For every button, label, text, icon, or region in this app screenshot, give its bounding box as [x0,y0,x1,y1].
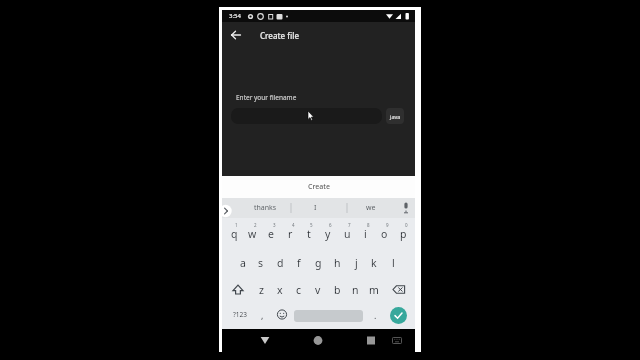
staticText: t [307,227,311,241]
button[interactable]: n [346,282,364,297]
button[interactable]: . [368,307,382,322]
button[interactable]: c [290,282,308,297]
button[interactable] [222,198,236,218]
staticText: I [314,203,317,213]
button[interactable]: a [234,255,252,270]
button[interactable] [390,307,407,324]
staticText: v [315,283,321,297]
staticText: m [369,283,379,297]
staticText: p [400,227,407,241]
button[interactable] [363,332,379,348]
staticText: Enter your filename [236,93,297,102]
button[interactable]: x [271,282,289,297]
button[interactable]: b [328,282,346,297]
button[interactable] [257,332,273,348]
button[interactable] [230,282,246,297]
staticText: y [325,227,331,241]
staticText: 7 [348,222,351,228]
button[interactable]: r [281,226,299,241]
button[interactable]: thanks [250,201,280,215]
button[interactable]: v [309,282,327,297]
staticText: i [364,227,367,241]
button[interactable]: h [328,255,346,270]
staticText: , [261,309,264,321]
button[interactable]: t [300,226,318,241]
staticText: 9 [386,222,389,228]
button[interactable]: Create [222,176,415,198]
staticText: q [231,227,238,241]
button[interactable] [389,333,405,347]
button[interactable]: z [252,282,270,297]
button[interactable]: d [271,255,289,270]
button[interactable]: l [384,255,402,270]
button[interactable]: e [262,226,280,241]
staticText: s [258,256,264,270]
button[interactable]: ?123 [229,307,251,322]
button[interactable]: q [225,226,243,241]
button[interactable]: , [255,307,269,322]
button[interactable]: k [365,255,383,270]
staticText: 0 [405,222,408,228]
button[interactable]: j [347,255,365,270]
staticText: h [334,256,341,270]
staticText: 1 [235,222,238,228]
staticText: x [277,283,283,297]
staticText: w [248,227,257,241]
staticText: r [288,227,293,241]
staticText: e [268,227,274,241]
staticText: . [374,309,377,321]
staticText: c [296,283,302,297]
button[interactable]: m [365,282,383,297]
button[interactable]: u [338,226,356,241]
button[interactable] [274,307,290,322]
button[interactable]: f [290,255,308,270]
staticText: u [344,227,351,241]
staticText: 5 [310,222,313,228]
staticText: ?123 [233,310,247,319]
staticText: l [392,256,395,270]
staticText: b [334,283,341,297]
staticText: o [381,227,388,241]
staticText: we [366,203,376,213]
staticText: 3:54 [229,12,241,20]
staticText: thanks [254,203,277,213]
staticText: f [297,256,301,270]
staticText: 2 [254,222,257,228]
button[interactable]: o [375,226,393,241]
staticText: n [352,283,359,297]
staticText: 8 [367,222,370,228]
staticText: d [277,256,284,270]
button[interactable]: we [360,201,382,215]
staticText: Create file [260,30,299,41]
staticText: 3 [273,222,276,228]
button[interactable]: java [386,108,404,124]
button[interactable]: s [252,255,270,270]
button[interactable]: i [356,226,374,241]
button[interactable]: I [304,201,326,215]
button[interactable]: g [309,255,327,270]
staticText: g [315,256,322,270]
button[interactable]: w [243,226,261,241]
button[interactable] [228,27,244,43]
button[interactable]: p [394,226,412,241]
button[interactable]: y [319,226,337,241]
staticText: 4 [292,222,295,228]
button[interactable] [391,282,407,297]
button[interactable] [231,108,382,124]
button[interactable] [310,332,326,348]
staticText: 6 [329,222,332,228]
staticText: z [259,283,264,297]
staticText: j [355,256,358,270]
staticText: Create [308,182,330,192]
staticText: k [371,256,377,270]
staticText: java [390,113,401,120]
staticText: a [240,256,246,270]
